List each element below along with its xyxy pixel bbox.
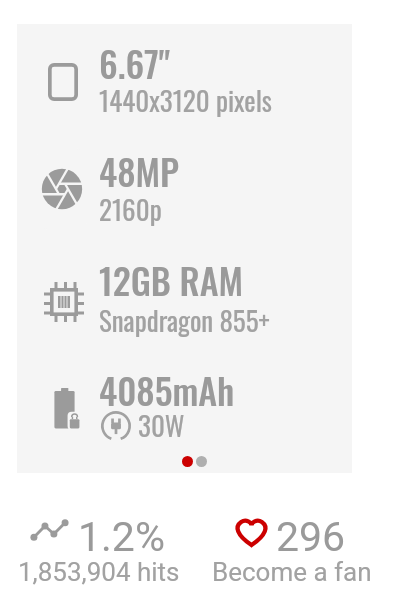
- other: Popularity: [32, 520, 67, 540]
- button[interactable]: Popularity: [0, 506, 199, 596]
- button[interactable]: Camera: [17, 146, 352, 250]
- staticText: 1.2%: [78, 513, 165, 561]
- staticText: 30W: [138, 405, 185, 445]
- other: Display: [48, 63, 78, 101]
- other: Chipset: [44, 282, 84, 322]
- staticText: 1,853,904 hits: [18, 557, 180, 587]
- button[interactable]: Display: [17, 38, 352, 142]
- button[interactable]: Battery: [17, 365, 352, 465]
- other: Become a fan: [233, 515, 270, 550]
- staticText: 6.67": [99, 36, 171, 89]
- staticText: 48MP: [99, 144, 180, 197]
- other: Camera: [41, 168, 83, 210]
- other: Battery: [52, 388, 77, 430]
- staticText: 2160p: [99, 189, 162, 229]
- button[interactable]: Become a fan: [199, 506, 399, 596]
- button[interactable]: Chipset: [17, 255, 352, 359]
- other: Charging speed: [101, 411, 131, 441]
- button[interactable]: [196, 456, 207, 467]
- button[interactable]: [182, 456, 193, 467]
- staticText: 1440x3120 pixels: [99, 80, 272, 120]
- staticText: 4085mAh: [99, 363, 235, 416]
- staticText: 296: [276, 513, 346, 561]
- staticText: Snapdragon 855+: [99, 300, 270, 340]
- staticText: Become a fan: [212, 557, 372, 587]
- staticText: 12GB RAM: [99, 253, 244, 306]
